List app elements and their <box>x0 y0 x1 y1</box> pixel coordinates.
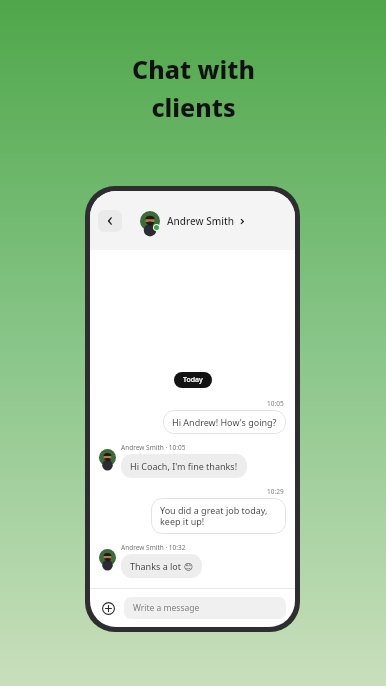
button[interactable]: Write a message <box>124 597 286 619</box>
button[interactable]: Hi Andrew! How's going? <box>163 410 286 434</box>
staticText: 10:05 <box>267 399 284 408</box>
staticText: Chat with <box>132 52 255 86</box>
staticText: Hi Andrew! How's going? <box>172 416 277 428</box>
staticText: Thanks a lot 😊 <box>130 560 193 572</box>
staticText: Today <box>183 375 203 385</box>
button[interactable]: Add attachment <box>99 599 117 617</box>
staticText: 10:29 <box>267 487 284 496</box>
button[interactable]: Back <box>98 210 122 232</box>
button[interactable]: Andrew Smith <box>140 211 246 231</box>
staticText: Hi Coach, I'm fine thanks! <box>130 460 238 472</box>
staticText: You did a great job today, keep it up! <box>160 504 277 528</box>
staticText: Andrew Smith · 10:32 <box>121 543 186 552</box>
button[interactable]: Hi Coach, I'm fine thanks! <box>121 454 247 478</box>
staticText: clients <box>151 90 236 124</box>
staticText: Write a message <box>133 602 200 614</box>
button[interactable]: Thanks a lot 😊 <box>121 554 202 578</box>
button[interactable]: You did a great job today, keep it up! <box>151 498 286 534</box>
staticText: Andrew Smith <box>167 214 235 228</box>
staticText: Andrew Smith · 10:05 <box>121 443 186 452</box>
